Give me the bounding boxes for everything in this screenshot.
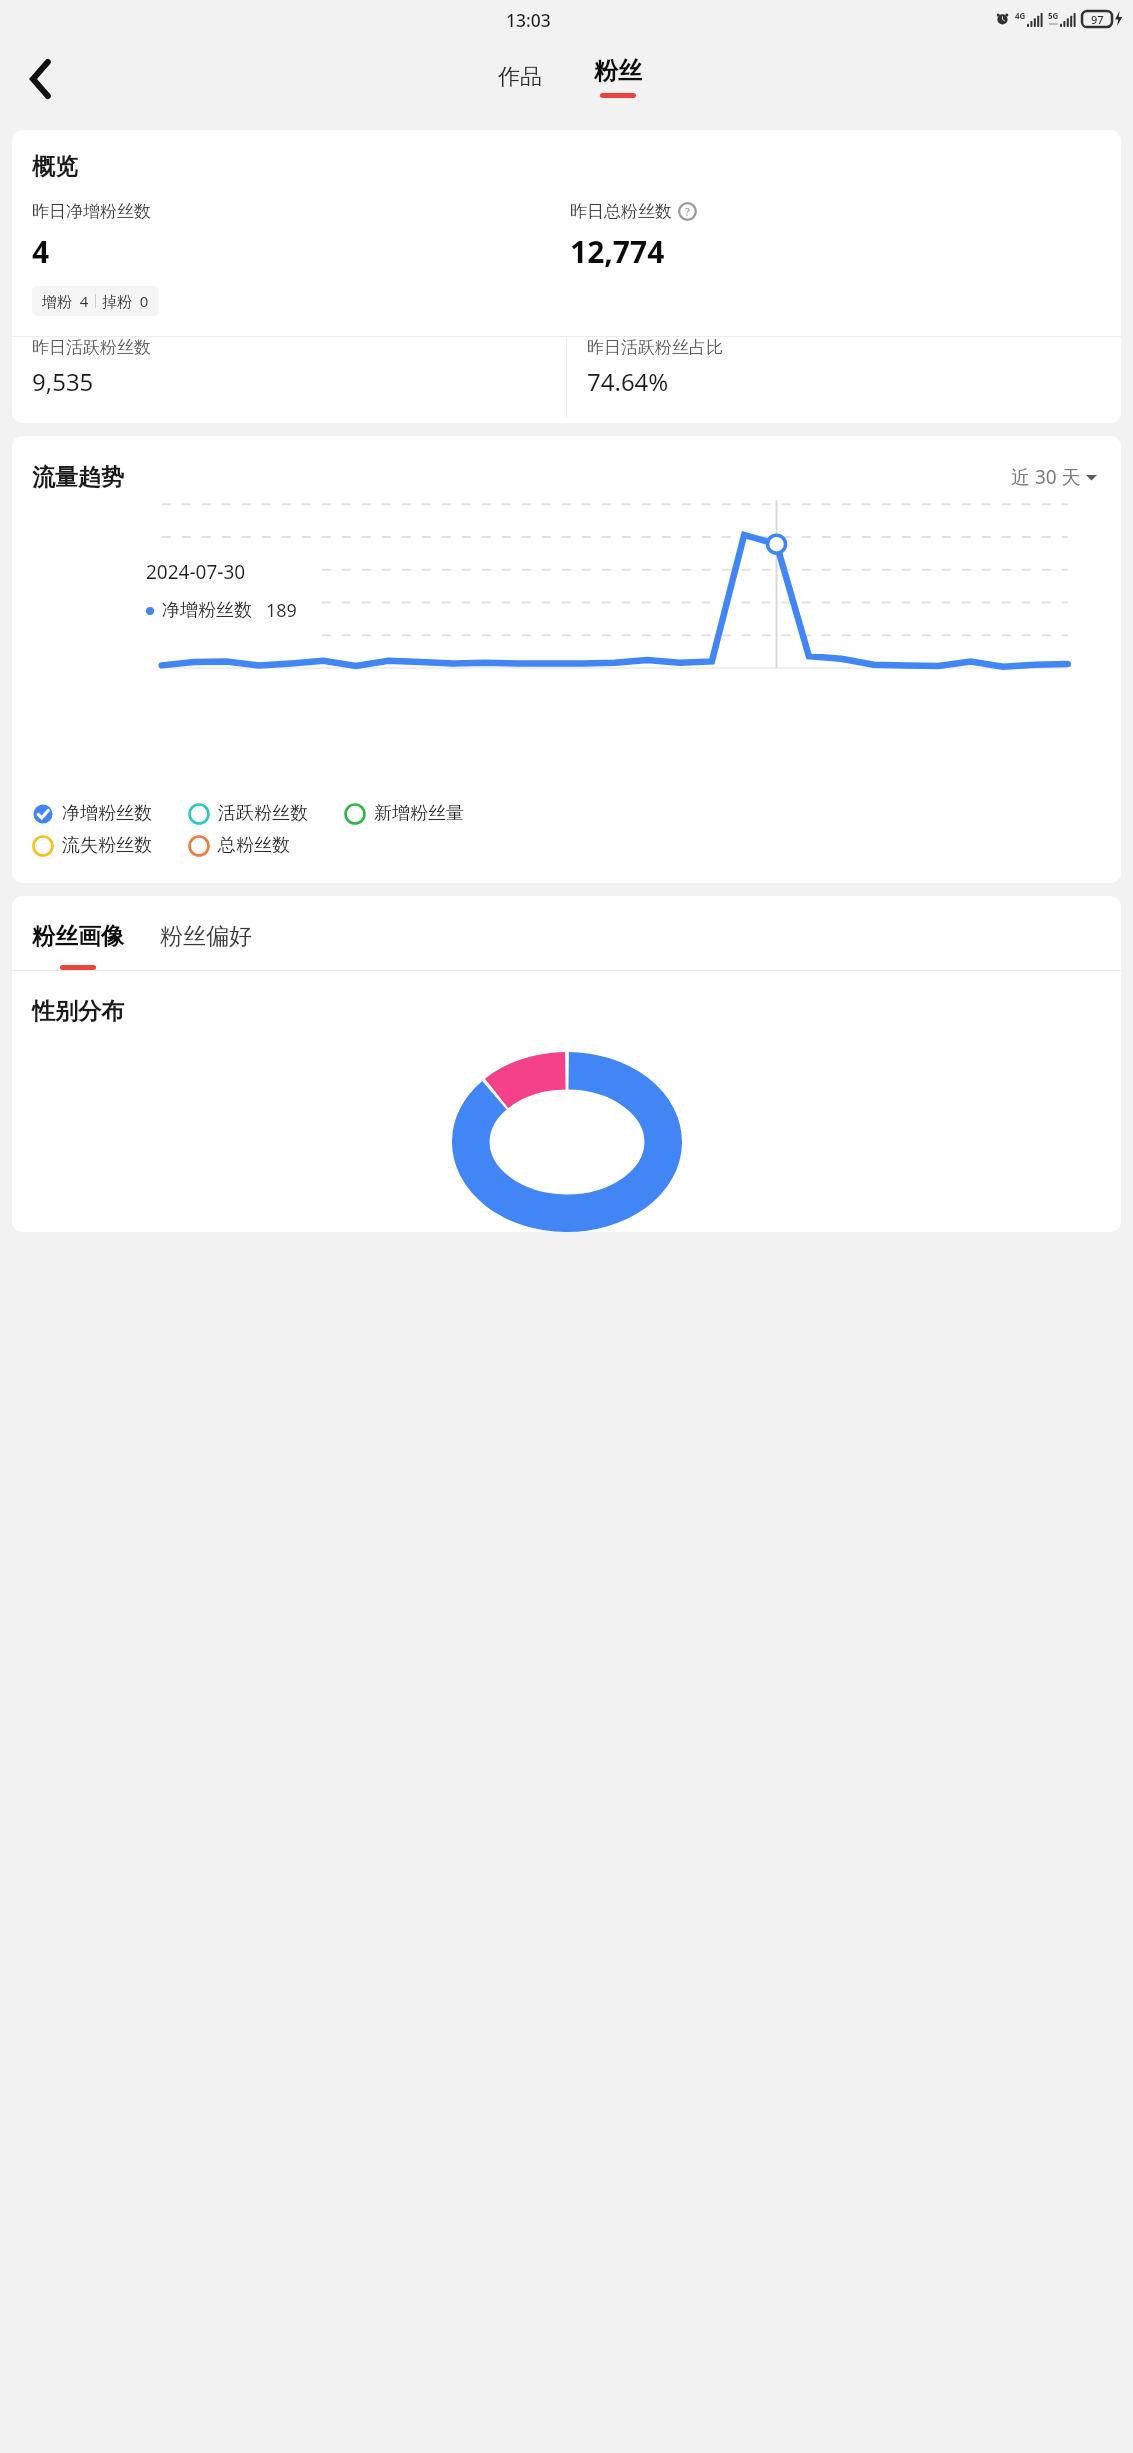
button[interactable]: 粉丝偏好 (160, 922, 252, 951)
staticText: 作品 (498, 63, 542, 91)
staticText: 粉丝画像 (32, 922, 124, 951)
staticText: 概览 (32, 152, 78, 181)
button[interactable]: 活跃粉丝数 (188, 802, 336, 825)
staticText: 近 30 天 (1011, 464, 1081, 490)
staticText: 昨日净增粉丝数 (32, 201, 151, 222)
staticText: 活跃粉丝数 (218, 802, 308, 825)
staticText: 昨日总粉丝数 (570, 201, 672, 222)
staticText: 4G (1015, 10, 1026, 21)
staticText: 5G (1048, 10, 1059, 21)
staticText: 性别分布 (32, 997, 124, 1026)
staticText: 4 (32, 231, 50, 272)
staticText: 13:03 (506, 8, 551, 32)
button[interactable]: 说明 (678, 202, 697, 221)
staticText: 12,774 (570, 231, 665, 272)
button[interactable]: 净增粉丝数 (32, 802, 180, 825)
staticText: 粉丝偏好 (160, 922, 252, 951)
staticText: 粉丝 (594, 56, 642, 86)
staticText: ? (685, 204, 690, 219)
button[interactable]: 粉丝 (582, 52, 654, 102)
button[interactable]: 新增粉丝量 (344, 802, 492, 825)
button[interactable]: 流失粉丝数 (32, 834, 180, 857)
staticText: 9,535 (32, 365, 94, 398)
staticText: 新增粉丝量 (374, 802, 464, 825)
button[interactable]: Back (14, 52, 68, 106)
staticText: 流量趋势 (32, 463, 124, 492)
staticText: 总粉丝数 (218, 834, 290, 857)
button[interactable]: 粉丝画像 (32, 922, 124, 970)
staticText: 流失粉丝数 (62, 834, 152, 857)
button[interactable]: 近 30 天 (1007, 460, 1101, 494)
staticText: 昨日活跃粉丝数 (32, 337, 151, 358)
staticText: 74.64% (587, 365, 669, 398)
staticText: 2024-07-30 (146, 559, 246, 585)
staticText: 净增粉丝数 (162, 599, 252, 622)
staticText: 增粉 4 (42, 291, 89, 311)
staticText: 净增粉丝数 (62, 802, 152, 825)
button[interactable]: 总粉丝数 (188, 834, 336, 857)
button[interactable]: 作品 (480, 57, 560, 97)
staticText: 昨日活跃粉丝占比 (587, 337, 723, 358)
staticText: 189 (266, 598, 297, 623)
staticText: 97 (1091, 12, 1104, 27)
staticText: 掉粉 0 (102, 291, 149, 311)
